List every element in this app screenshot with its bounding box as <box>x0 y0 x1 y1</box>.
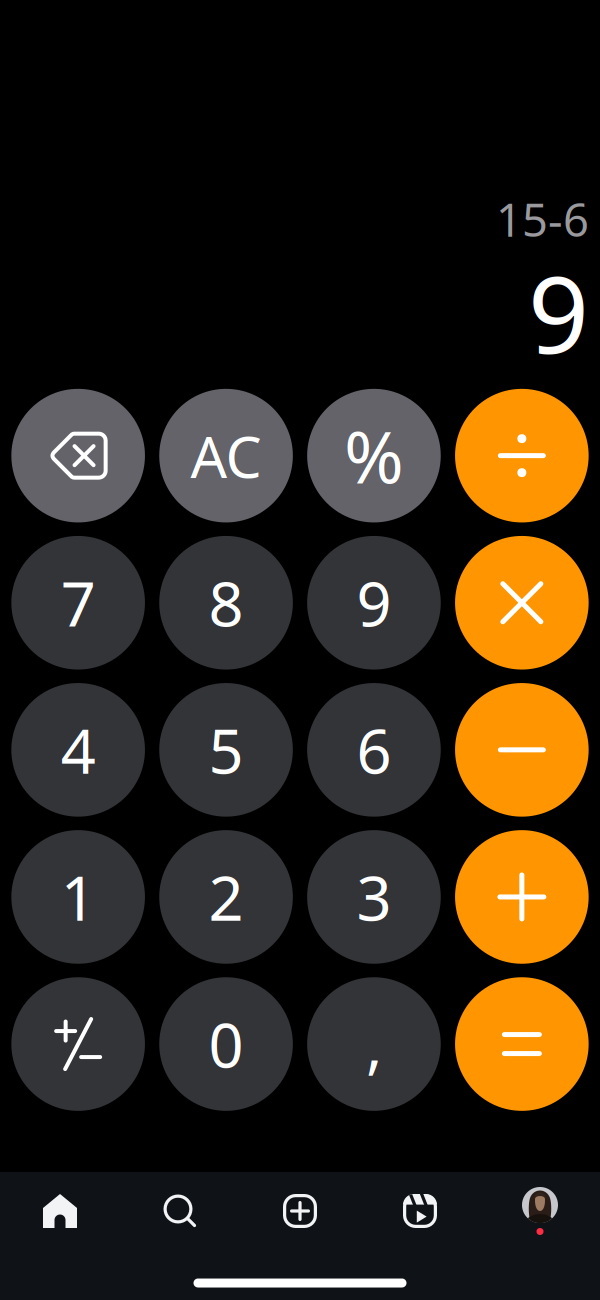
staticText: 2 <box>209 856 244 938</box>
button[interactable]: 6 <box>307 683 441 817</box>
button[interactable]: 0 <box>159 977 293 1111</box>
button[interactable]: 4 <box>11 683 145 817</box>
staticText: 9 <box>356 562 391 643</box>
staticText: 4 <box>61 709 96 790</box>
button[interactable]: Home <box>0 1181 120 1241</box>
button[interactable]: Minus <box>455 683 589 817</box>
button[interactable]: 3 <box>307 830 441 964</box>
staticText: 0 <box>209 1003 244 1085</box>
staticText: , <box>366 1003 382 1085</box>
staticText: 7 <box>61 562 96 643</box>
button[interactable]: 2 <box>159 830 293 964</box>
button[interactable]: 9 <box>307 536 441 669</box>
button[interactable]: 7 <box>11 536 145 669</box>
button[interactable]: Multiply <box>455 536 589 669</box>
button[interactable]: 8 <box>159 536 293 669</box>
staticText: 1 <box>61 856 96 938</box>
button[interactable]: Profile <box>480 1181 600 1241</box>
button[interactable]: Plus <box>455 830 589 964</box>
staticText: 9 <box>528 241 589 383</box>
button[interactable]: 1 <box>11 830 145 964</box>
staticText: 3 <box>356 856 391 938</box>
button[interactable]: Create <box>240 1181 360 1241</box>
button[interactable]: % <box>307 389 441 522</box>
button[interactable]: 5 <box>159 683 293 817</box>
button[interactable]: Toggle sign <box>11 977 145 1111</box>
staticText: 6 <box>356 709 391 790</box>
button[interactable]: Divide <box>455 389 589 522</box>
staticText: 5 <box>209 709 244 790</box>
staticText: 8 <box>209 562 244 643</box>
button[interactable]: , <box>307 977 441 1111</box>
button[interactable]: AC <box>159 389 293 522</box>
staticText: AC <box>191 418 262 494</box>
button[interactable]: Delete <box>11 389 145 522</box>
button[interactable]: Search <box>120 1181 240 1241</box>
button[interactable]: Reels <box>360 1181 480 1241</box>
staticText: 15-6 <box>496 189 589 249</box>
button[interactable]: Equals <box>455 977 589 1111</box>
staticText: % <box>344 408 404 503</box>
